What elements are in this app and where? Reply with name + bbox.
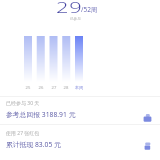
staticText: 28 — [56, 85, 76, 91]
staticText: 26 — [31, 85, 51, 91]
button[interactable]: 使用 27 张红包 — [0, 127, 160, 154]
staticText: 已经参与 30 天 — [6, 100, 40, 107]
staticText: 参考总回报 3188.91 元 — [6, 110, 76, 119]
staticText: 累计抵现 83.05 元 — [6, 140, 61, 149]
staticText: /52周 — [81, 5, 98, 14]
staticText: 29 — [56, 0, 114, 17]
staticText: 已参与 — [70, 17, 81, 22]
staticText: 使用 27 张红包 — [6, 130, 40, 137]
other: Red packet — [143, 141, 153, 151]
other: Wallet — [143, 113, 153, 123]
staticText: 本周 — [69, 85, 89, 90]
staticText: 27 — [44, 85, 64, 91]
button[interactable]: 已经参与 30 天 — [0, 97, 160, 124]
staticText: 25 — [18, 85, 38, 91]
